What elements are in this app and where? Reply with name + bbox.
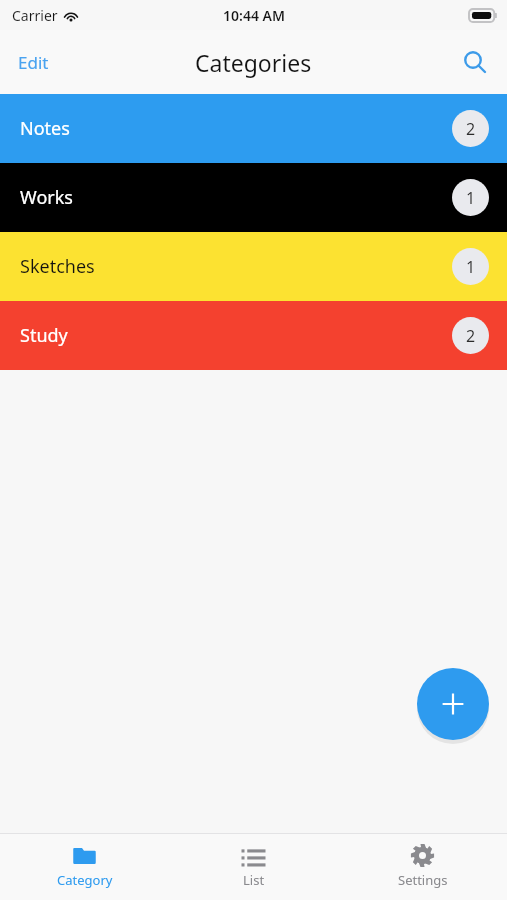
staticText: Study xyxy=(20,323,68,348)
button[interactable]: Add category xyxy=(417,668,489,740)
staticText: 1 xyxy=(466,256,476,278)
button[interactable]: Search xyxy=(451,38,499,86)
staticText: 1 xyxy=(466,187,476,209)
button[interactable]: Sketches xyxy=(0,232,507,301)
staticText: 10:44 AM xyxy=(223,6,285,25)
staticText: Carrier xyxy=(12,6,58,25)
staticText: Categories xyxy=(195,47,312,78)
staticText: Sketches xyxy=(20,254,95,279)
staticText: Works xyxy=(20,185,73,210)
button[interactable]: Category xyxy=(0,834,169,889)
button[interactable]: Notes xyxy=(0,94,507,163)
staticText: 2 xyxy=(466,325,476,347)
button[interactable]: Works xyxy=(0,163,507,232)
staticText: Edit xyxy=(18,51,49,74)
staticText: Settings xyxy=(398,871,448,889)
button[interactable]: Edit xyxy=(0,39,67,86)
staticText: Notes xyxy=(20,116,70,141)
staticText: 2 xyxy=(466,118,476,140)
staticText: Category xyxy=(57,871,113,889)
staticText: List xyxy=(243,871,265,889)
button[interactable]: Study xyxy=(0,301,507,370)
button[interactable]: List xyxy=(169,834,338,889)
button[interactable]: Settings xyxy=(338,834,507,889)
